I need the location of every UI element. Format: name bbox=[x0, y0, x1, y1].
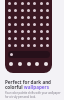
staticText: Your color palette shifts with your wall… bbox=[5, 91, 61, 99]
staticText: Perfect for dark and colorful wallpapers bbox=[5, 79, 52, 90]
